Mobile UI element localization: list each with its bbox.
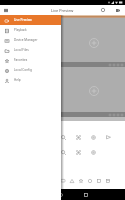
button[interactable]: Pane option 1 (108, 113, 111, 116)
button[interactable]: Playback (0, 25, 61, 35)
button[interactable]: Add camera (87, 84, 100, 97)
button[interactable]: Toolbar action 5 (96, 178, 101, 183)
button[interactable]: Pane option 4 (120, 63, 123, 66)
button[interactable]: Toolbar action 4 (87, 178, 92, 183)
staticText: Local Config (14, 68, 32, 72)
button[interactable]: Refresh (99, 6, 107, 14)
staticText: Favorites (14, 58, 28, 62)
button[interactable]: Pane option 1 (108, 63, 111, 66)
staticText: Help (14, 78, 21, 82)
button[interactable]: Control 2 (71, 133, 86, 141)
staticText: Device Manager (14, 38, 38, 42)
button[interactable]: Help (0, 75, 61, 85)
button[interactable]: Control 5 (56, 148, 71, 156)
staticText: Local Files (14, 48, 29, 52)
button[interactable]: Local Files (0, 45, 61, 55)
button[interactable]: Control 1 (56, 133, 71, 141)
button[interactable]: Control 6 (71, 148, 86, 156)
button[interactable]: Add camera (87, 36, 100, 49)
staticText: Playback (14, 28, 27, 32)
button[interactable]: Open navigation menu (1, 6, 10, 15)
button[interactable]: Pane option 2 (112, 113, 115, 116)
button[interactable]: Control 7 (86, 148, 101, 156)
button[interactable]: Control 3 (86, 133, 101, 141)
staticText: Live Preview (14, 18, 32, 22)
button[interactable]: Toolbar action 6 (105, 178, 110, 183)
button[interactable]: Local Config (0, 65, 61, 75)
button[interactable]: Pane option 4 (120, 113, 123, 116)
button[interactable]: Pane option 3 (116, 113, 119, 116)
button[interactable]: Toolbar action 2 (69, 178, 74, 183)
button[interactable]: Toolbar action 3 (78, 178, 83, 183)
button[interactable]: Device Manager (0, 35, 61, 45)
button[interactable]: Pane option 2 (112, 63, 115, 66)
button[interactable]: Recent apps (80, 189, 91, 200)
button[interactable]: Pane option 3 (116, 63, 119, 66)
button[interactable]: Favorites (0, 55, 61, 65)
button[interactable]: Record video (114, 6, 122, 14)
button[interactable]: Live Preview (0, 15, 61, 25)
staticText: Live Preview (51, 8, 74, 13)
button[interactable]: Toolbar action 1 (60, 178, 65, 183)
button[interactable]: Control 4 (101, 133, 116, 141)
button[interactable]: Home (55, 189, 66, 200)
